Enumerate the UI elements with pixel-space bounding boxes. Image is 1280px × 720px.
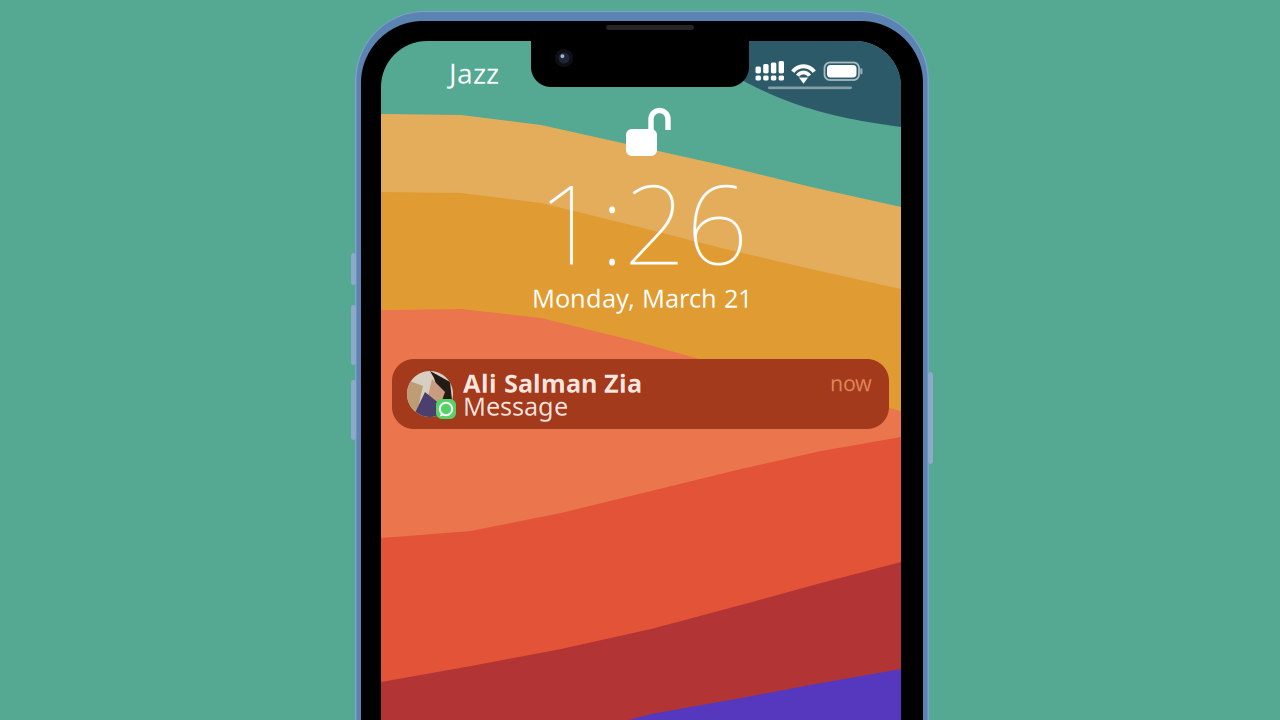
button[interactable]: Ali Salman Zia: [0, 0, 1280, 720]
staticText: Jazz: [449, 54, 499, 92]
staticText: 1:26: [538, 149, 748, 295]
staticText: now: [830, 369, 872, 397]
staticText: Monday, March 21: [532, 281, 752, 315]
staticText: Ali Salman Zia: [463, 366, 642, 400]
staticText: Message: [463, 389, 568, 423]
